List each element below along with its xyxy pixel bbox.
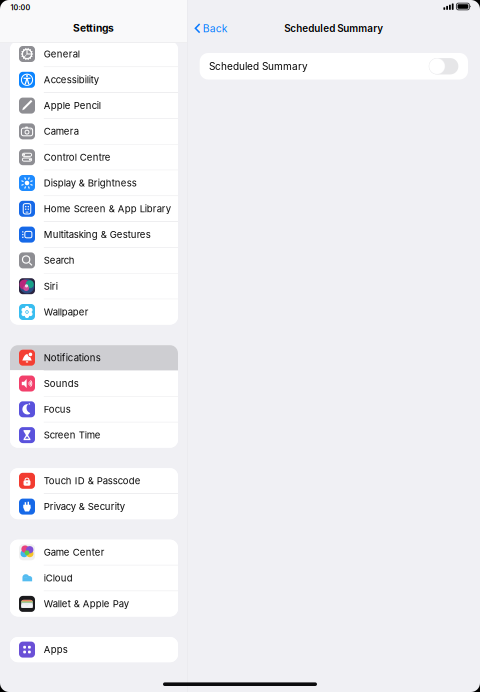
button[interactable]: Focus — [10, 397, 178, 422]
staticText: Back — [203, 22, 228, 35]
staticText: Home Screen & App Library — [44, 203, 171, 214]
button[interactable]: Scheduled Summary — [200, 53, 468, 79]
button[interactable]: Back — [188, 17, 228, 40]
button[interactable]: Search — [10, 248, 178, 273]
staticText: Camera — [44, 126, 79, 137]
button[interactable]: Screen Time — [10, 422, 178, 448]
button[interactable]: Wallet & Apple Pay — [10, 591, 178, 616]
button[interactable]: Apps — [10, 637, 178, 662]
button[interactable]: Wallpaper — [10, 299, 178, 325]
staticText: Privacy & Security — [44, 501, 125, 512]
staticText: Game Center — [44, 546, 105, 558]
staticText: 10:00 — [10, 3, 30, 12]
button[interactable]: Privacy & Security — [10, 494, 178, 519]
staticText: Scheduled Summary — [284, 22, 383, 34]
staticText: Scheduled Summary — [209, 60, 308, 72]
button[interactable]: iCloud — [10, 565, 178, 591]
staticText: Screen Time — [44, 429, 101, 441]
button[interactable]: Accessibility — [10, 67, 178, 92]
staticText: Sounds — [44, 378, 79, 389]
staticText: Apps — [44, 644, 68, 655]
staticText: Wallet & Apple Pay — [44, 598, 129, 610]
button[interactable]: General — [10, 41, 178, 67]
staticText: General — [44, 48, 80, 60]
staticText: Multitasking & Gestures — [44, 229, 151, 240]
staticText: Touch ID & Passcode — [44, 475, 141, 486]
staticText: Notifications — [44, 352, 101, 363]
staticText: Display & Brightness — [44, 177, 137, 189]
button[interactable]: Home Screen & App Library — [10, 196, 178, 221]
staticText: iCloud — [44, 572, 73, 584]
button[interactable]: Siri — [10, 274, 178, 299]
staticText: Settings — [73, 22, 114, 34]
button[interactable]: Sounds — [10, 371, 178, 396]
button[interactable]: Camera — [10, 119, 178, 144]
staticText: Control Centre — [44, 151, 111, 163]
staticText: Search — [44, 255, 75, 266]
staticText: Accessibility — [44, 74, 99, 85]
button[interactable]: Control Centre — [10, 145, 178, 170]
button[interactable]: Apple Pencil — [10, 93, 178, 118]
staticText: Focus — [44, 403, 71, 415]
staticText: Siri — [44, 280, 58, 292]
staticText: Apple Pencil — [44, 100, 101, 111]
button[interactable]: Touch ID & Passcode — [10, 468, 178, 493]
button[interactable]: Notifications — [10, 345, 178, 370]
button[interactable]: Display & Brightness — [10, 170, 178, 196]
button[interactable]: Game Center — [10, 540, 178, 565]
button[interactable]: Multitasking & Gestures — [10, 222, 178, 247]
staticText: Wallpaper — [44, 306, 89, 318]
